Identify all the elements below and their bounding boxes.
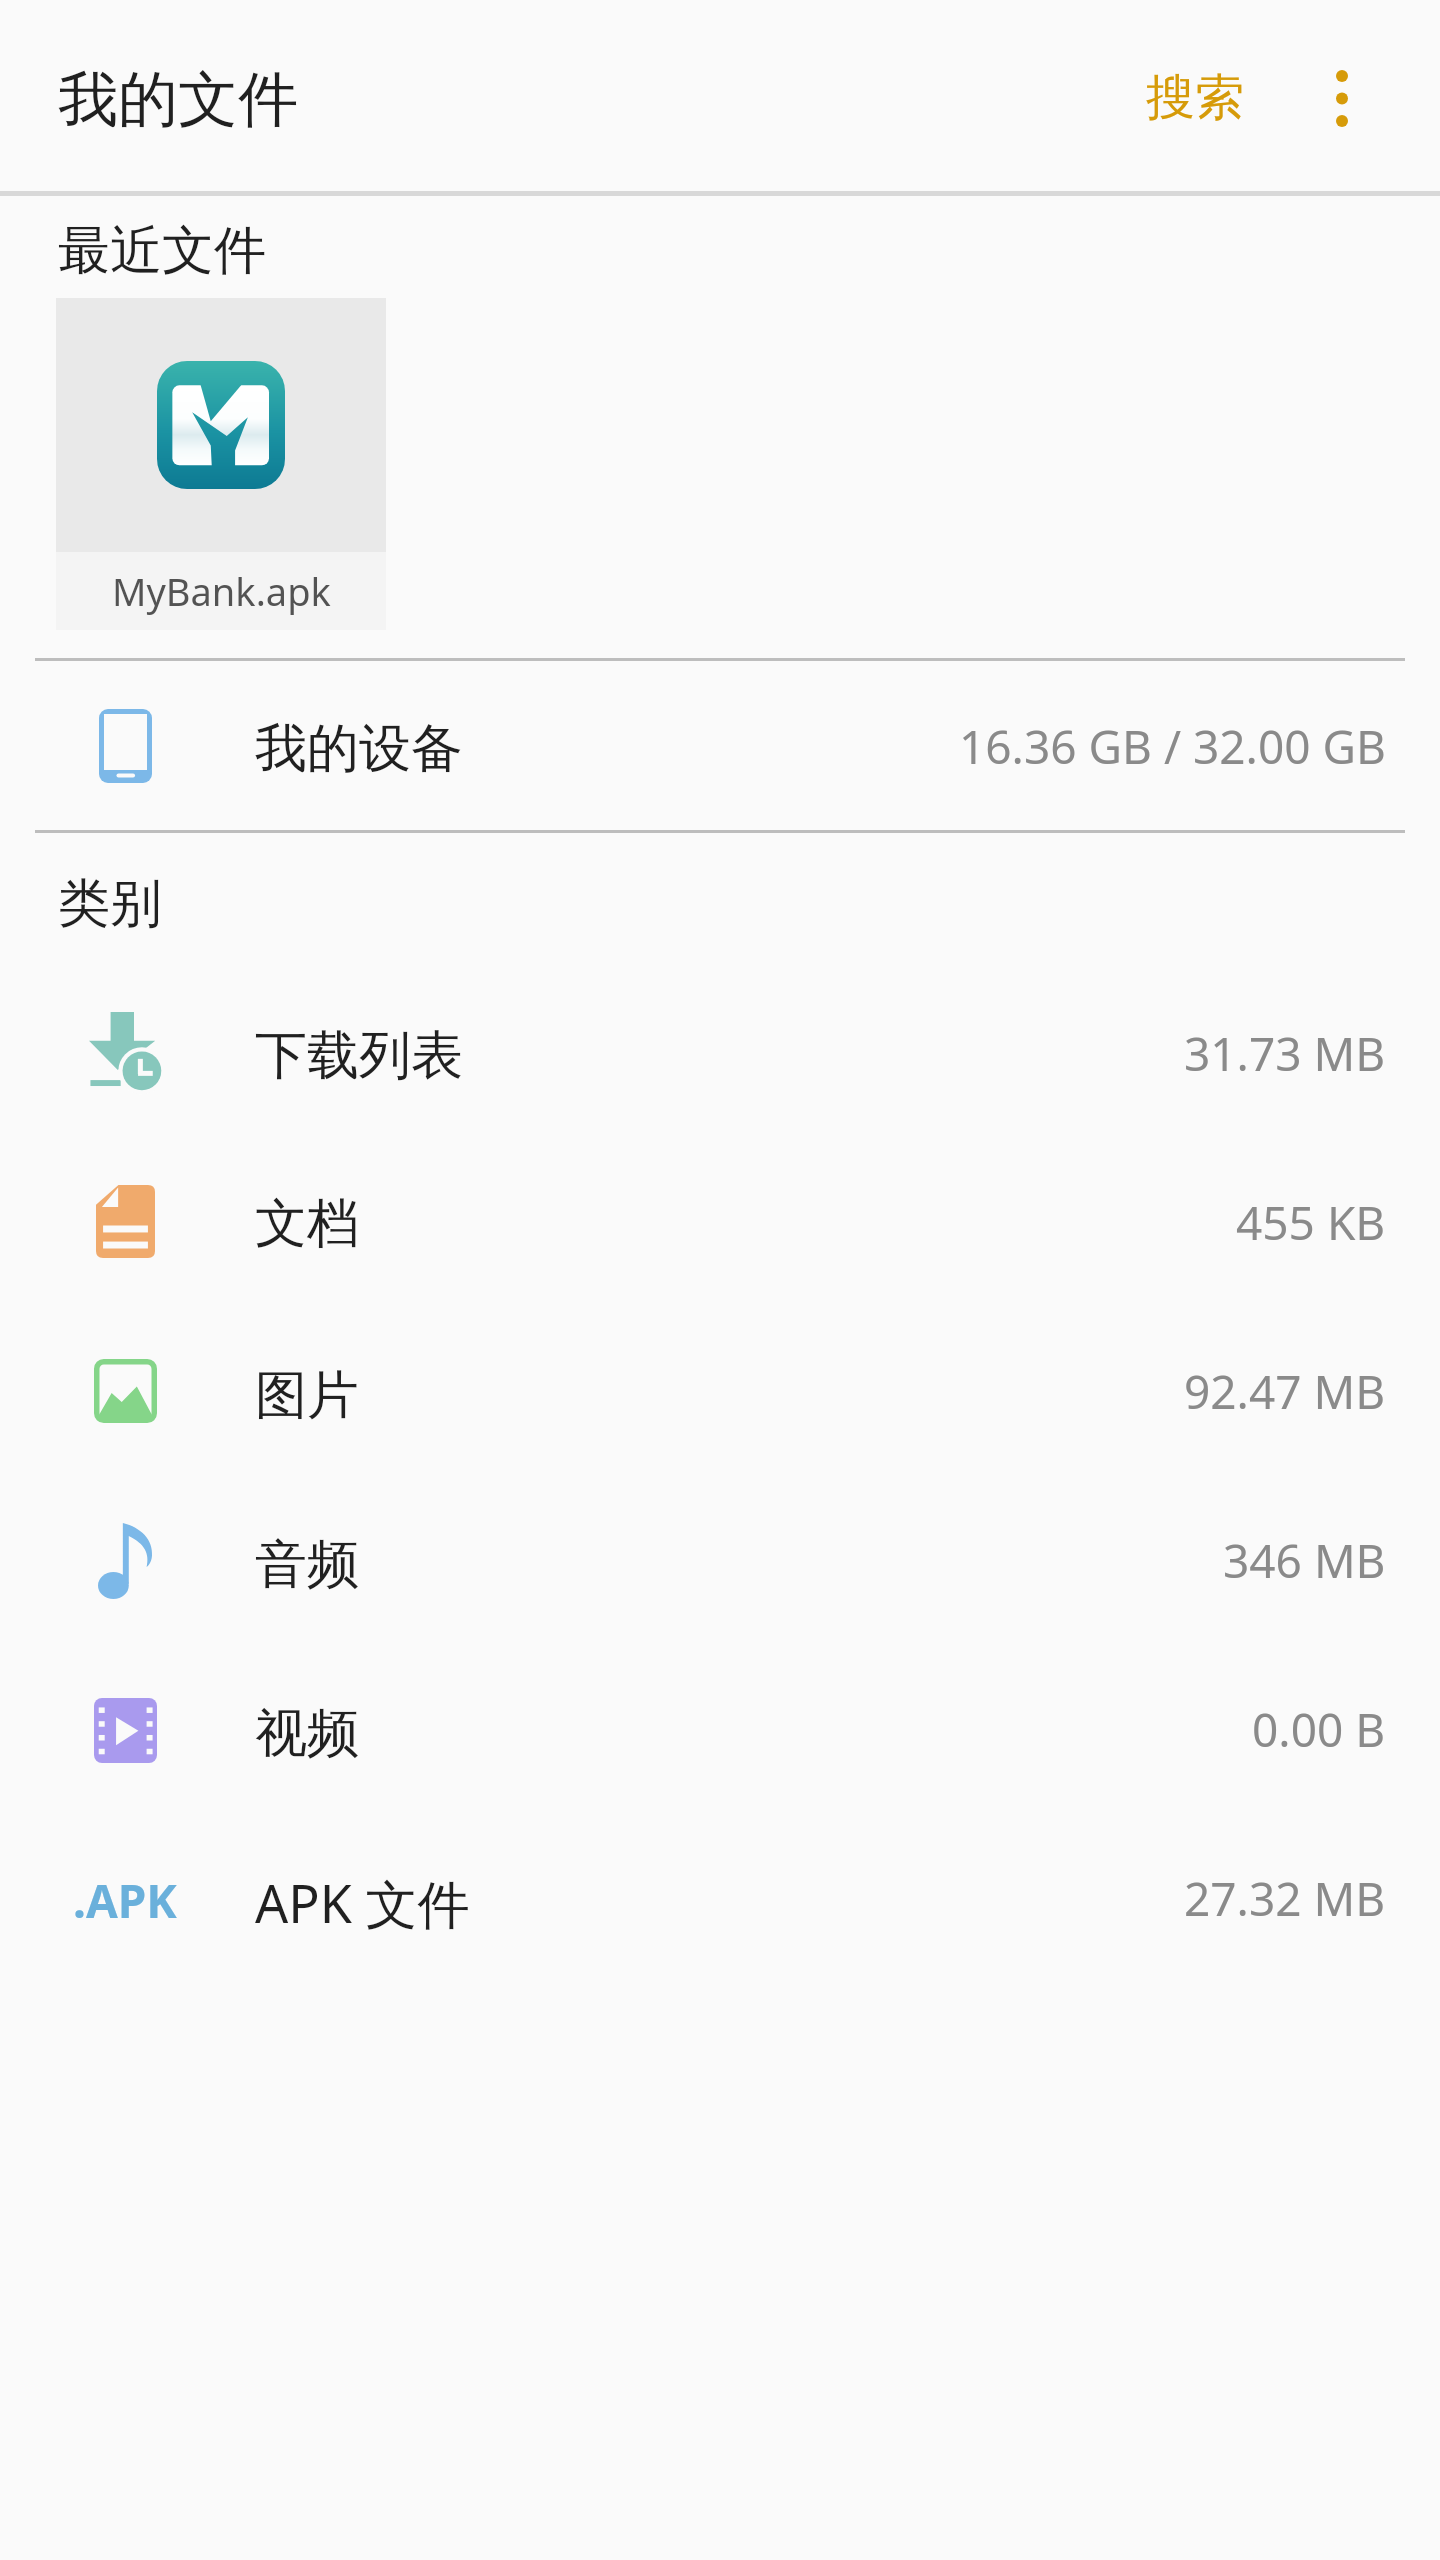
staticText: 视频 xyxy=(255,1701,359,1767)
button[interactable]: 图片 xyxy=(0,1311,1440,1480)
button[interactable]: 文档 xyxy=(0,1142,1440,1311)
staticText: 下载列表 xyxy=(255,1023,463,1089)
staticText: 我的设备 xyxy=(255,716,463,782)
staticText: 346 MB xyxy=(1223,1529,1386,1592)
button[interactable]: 下载列表 xyxy=(0,973,1440,1142)
staticText: 文档 xyxy=(255,1191,359,1257)
staticText: MyBank.apk xyxy=(112,565,331,617)
staticText: 搜索 xyxy=(1146,67,1244,129)
button[interactable]: 视频 xyxy=(0,1649,1440,1818)
staticText: 0.00 B xyxy=(1252,1698,1386,1761)
staticText: 455 KB xyxy=(1236,1191,1386,1254)
button[interactable]: 音频 xyxy=(0,1480,1440,1649)
button[interactable]: 我的设备 xyxy=(0,661,1440,830)
staticText: 图片 xyxy=(255,1363,359,1429)
staticText: .APK xyxy=(73,1869,177,1932)
staticText: 27.32 MB xyxy=(1184,1867,1386,1930)
staticText: 类别 xyxy=(58,871,162,937)
staticText: 31.73 MB xyxy=(1184,1022,1386,1085)
button[interactable]: More options xyxy=(1282,0,1402,196)
button[interactable]: MyBank.apk xyxy=(56,298,386,630)
staticText: 音频 xyxy=(255,1532,359,1598)
button[interactable]: .APK xyxy=(0,1818,1440,1987)
staticText: 我的文件 xyxy=(58,62,298,138)
button[interactable]: 搜索 xyxy=(1125,0,1265,196)
staticText: APK 文件 xyxy=(255,1867,470,1938)
staticText: 92.47 MB xyxy=(1184,1360,1386,1423)
staticText: 16.36 GB / 32.00 GB xyxy=(959,715,1386,778)
staticText: 最近文件 xyxy=(58,218,266,284)
